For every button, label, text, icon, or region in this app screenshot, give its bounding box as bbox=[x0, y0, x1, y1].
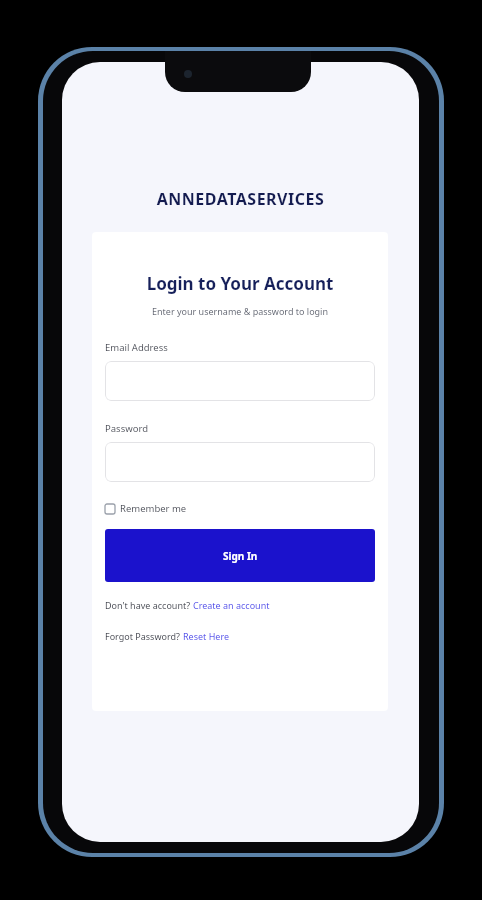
button[interactable]: Password input bbox=[105, 442, 375, 482]
staticText: Login to Your Account bbox=[92, 272, 388, 295]
staticText: Remember me bbox=[120, 502, 187, 515]
staticText: ANNEDATASERVICES bbox=[62, 188, 419, 210]
button[interactable]: Sign In bbox=[105, 529, 375, 582]
staticText: Enter your username & password to login bbox=[92, 305, 388, 317]
button[interactable]: Forgot Password? bbox=[105, 630, 230, 642]
button[interactable]: Remember me bbox=[105, 502, 187, 515]
staticText: Forgot Password? bbox=[105, 630, 183, 642]
button[interactable]: Email address input bbox=[105, 361, 375, 401]
staticText: Email Address bbox=[105, 341, 168, 354]
button[interactable]: Don't have account? bbox=[105, 599, 270, 611]
staticText: Create an account bbox=[193, 599, 270, 611]
staticText: Don't have account? bbox=[105, 599, 193, 611]
staticText: Reset Here bbox=[183, 630, 230, 642]
staticText: Password bbox=[105, 422, 148, 435]
staticText: Sign In bbox=[223, 549, 258, 563]
